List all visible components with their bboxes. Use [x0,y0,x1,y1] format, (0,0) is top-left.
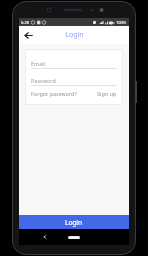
staticText: 100% [116,20,127,25]
staticText: Login [65,30,84,40]
staticText: 6:28 [21,20,29,25]
staticText: Sign up [97,90,117,97]
staticText: Forgot password? [31,90,77,97]
staticText: Login [65,218,83,227]
button[interactable]: Email [31,58,117,69]
staticText: Email [31,60,46,67]
button[interactable]: Sign up [97,89,117,98]
button[interactable]: Login [19,215,129,229]
button[interactable]: Password [31,75,117,86]
staticText: Password [31,77,56,84]
button[interactable]: Back [21,28,35,42]
button[interactable]: Forgot password? [31,89,77,98]
button[interactable]: Back [41,233,49,241]
button[interactable]: Home [66,233,82,241]
